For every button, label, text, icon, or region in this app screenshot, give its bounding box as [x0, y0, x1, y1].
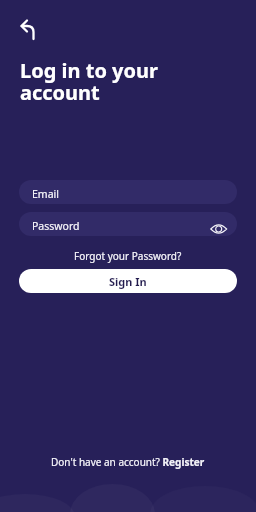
button[interactable]: Forgot your Password? [74, 249, 182, 263]
staticText: Sign In [109, 274, 147, 289]
staticText: Don't have an account? Register [51, 455, 205, 469]
staticText: Email [32, 187, 59, 201]
button[interactable]: Sign In [19, 269, 237, 293]
button[interactable] [13, 14, 41, 42]
button[interactable]: Don't have an account? Register [0, 455, 256, 469]
button[interactable]: Password [19, 212, 237, 236]
staticText: Log in to your account [20, 57, 158, 106]
button[interactable]: Email [19, 180, 237, 204]
staticText: Password [32, 219, 80, 233]
